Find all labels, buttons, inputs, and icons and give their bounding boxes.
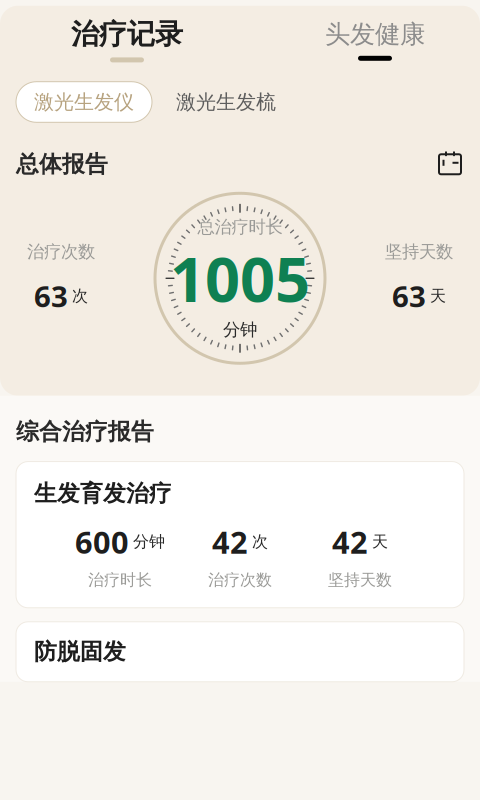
staticText: 激光生发梳 <box>176 90 276 114</box>
staticText: 次 <box>252 532 268 552</box>
staticText: 治疗记录 <box>71 17 183 51</box>
staticText: 综合治疗报告 <box>16 418 154 445</box>
staticText: 分钟 <box>133 532 165 552</box>
staticText: 生发育发治疗 <box>34 480 172 507</box>
button[interactable]: 激光生发仪 <box>16 82 152 122</box>
staticText: 头发健康 <box>325 19 425 50</box>
staticText: 激光生发仪 <box>34 90 134 114</box>
staticText: 1005 <box>170 238 310 319</box>
staticText: 分钟 <box>223 319 257 340</box>
button[interactable]: 选择日期 <box>436 150 464 178</box>
staticText: 治疗次数 <box>27 241 95 262</box>
staticText: 治疗时长 <box>88 570 152 590</box>
staticText: 42 <box>212 521 248 562</box>
staticText: 42 <box>332 521 368 562</box>
staticText: 63 <box>392 276 426 315</box>
button[interactable]: 生发育发治疗 <box>16 462 464 608</box>
staticText: 天 <box>372 532 388 552</box>
staticText: 天 <box>430 286 446 306</box>
staticText: 总体报告 <box>16 150 108 178</box>
staticText: 600 <box>75 521 129 562</box>
button[interactable]: 头发健康 <box>300 12 450 68</box>
staticText: 坚持天数 <box>385 241 453 262</box>
staticText: 次 <box>72 286 88 306</box>
button[interactable]: 激光生发梳 <box>166 82 286 122</box>
staticText: 坚持天数 <box>328 570 392 590</box>
button[interactable]: 治疗记录 <box>52 12 202 68</box>
staticText: 治疗次数 <box>208 570 272 590</box>
staticText: 防脱固发 <box>34 638 126 666</box>
staticText: 63 <box>34 276 68 315</box>
staticText: 总治疗时长 <box>197 216 282 238</box>
